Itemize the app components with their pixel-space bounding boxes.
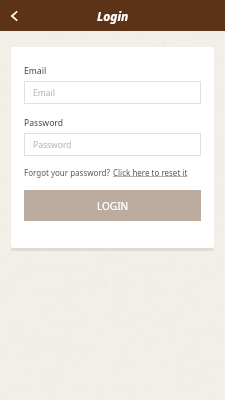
staticText: Password xyxy=(33,139,72,151)
staticText: LOGIN xyxy=(97,199,129,213)
staticText: Forgot your password? xyxy=(24,167,113,178)
staticText: Email xyxy=(33,87,55,99)
button[interactable]: Email xyxy=(24,81,201,104)
button[interactable]: LOGIN xyxy=(24,190,201,221)
staticText: Click here to reset it xyxy=(113,167,188,178)
staticText: Password xyxy=(24,117,64,129)
button[interactable]: Password xyxy=(24,133,201,156)
button[interactable]: Back xyxy=(0,1,30,31)
button[interactable]: Forgot your password? xyxy=(24,167,188,178)
staticText: Login xyxy=(97,8,129,24)
staticText: Email xyxy=(24,65,47,77)
